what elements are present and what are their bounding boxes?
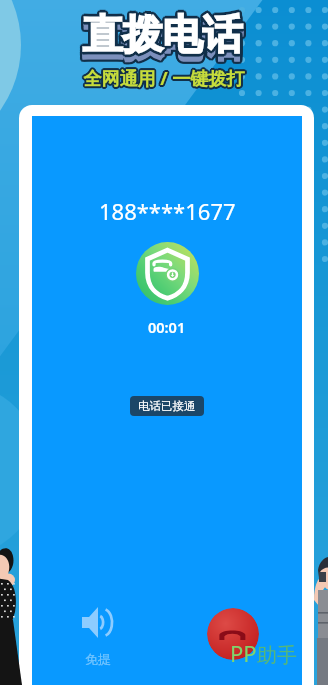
- button[interactable]: 电话已接通: [130, 396, 204, 416]
- staticText: 免提: [85, 651, 111, 667]
- staticText: 助手: [257, 643, 297, 668]
- button[interactable]: End call: [207, 608, 259, 660]
- staticText: 188****1677: [99, 196, 236, 226]
- staticText: 00:01: [148, 317, 186, 337]
- staticText: 电话已接通: [138, 399, 196, 413]
- button[interactable]: 免提: [76, 601, 120, 673]
- staticText: PP: [230, 638, 257, 668]
